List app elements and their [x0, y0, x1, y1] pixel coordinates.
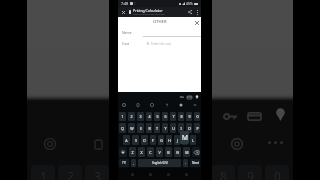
staticText: S — [135, 138, 137, 143]
button[interactable]: Q — [119, 123, 126, 133]
button[interactable]: L — [190, 135, 196, 145]
staticText: , — [133, 161, 134, 165]
button[interactable]: A — [123, 135, 130, 145]
button[interactable]: N — [174, 147, 181, 157]
staticText: J — [177, 138, 178, 143]
staticText: O — [188, 126, 191, 131]
button[interactable]: V — [156, 147, 163, 157]
button[interactable]: Recents — [165, 171, 172, 178]
button[interactable]: H — [166, 135, 172, 145]
button[interactable]: 2 — [128, 112, 135, 121]
button[interactable]: More — [191, 101, 199, 109]
button[interactable]: P — [194, 123, 200, 133]
button[interactable]: Close dialog — [193, 19, 200, 26]
staticText: 1 — [121, 114, 124, 119]
button[interactable]: Voice search — [120, 101, 128, 109]
staticText: 6 — [164, 114, 167, 119]
staticText: D — [143, 138, 146, 143]
staticText: 45% — [186, 1, 193, 6]
button[interactable]: T — [154, 123, 160, 133]
button[interactable]: Backspace — [192, 147, 200, 157]
staticText: K — [184, 138, 187, 143]
button[interactable]: M — [183, 147, 190, 157]
staticText: Next — [192, 161, 199, 165]
staticText: T — [156, 126, 158, 131]
button[interactable]: Menu — [183, 171, 190, 178]
button[interactable]: Y — [162, 123, 168, 133]
button[interactable]: 1 — [119, 112, 126, 121]
button[interactable]: Home — [147, 171, 154, 178]
staticText: C — [149, 150, 152, 155]
staticText: X — [140, 150, 143, 155]
button[interactable]: D — [141, 135, 148, 145]
staticText: ?1! — [122, 161, 127, 165]
staticText: Enter the cost — [151, 42, 172, 46]
button[interactable]: Settings — [177, 101, 185, 109]
button[interactable]: 3 — [137, 112, 144, 121]
staticText: Pricing Calculator — [133, 8, 163, 13]
button[interactable]: K — [182, 135, 188, 145]
staticText: N — [176, 150, 179, 155]
staticText: 9 — [247, 168, 254, 180]
staticText: 0 — [196, 114, 199, 119]
staticText: M — [182, 133, 188, 142]
staticText: 2 — [130, 114, 133, 119]
button[interactable]: Clipboard — [134, 101, 142, 109]
button[interactable]: F — [150, 135, 156, 145]
button[interactable]: E — [137, 123, 144, 133]
button[interactable]: Shift — [119, 147, 127, 157]
button[interactable]: I — [178, 123, 184, 133]
button[interactable]: Z — [129, 147, 136, 157]
staticText: 3 — [94, 168, 101, 180]
staticText: 5 — [156, 114, 159, 119]
button[interactable]: Next — [190, 159, 200, 167]
button[interactable]: O — [186, 123, 192, 133]
staticText: W — [130, 126, 134, 131]
button[interactable]: Microphone — [163, 101, 171, 109]
staticText: A — [125, 138, 128, 143]
button[interactable]: Emoji — [148, 101, 156, 109]
button[interactable]: 4 — [146, 112, 152, 121]
button[interactable]: Back — [129, 171, 136, 178]
button[interactable]: S — [132, 135, 139, 145]
staticText: Q — [121, 126, 124, 131]
button[interactable]: 0 — [194, 112, 200, 121]
button[interactable]: C — [147, 147, 154, 157]
button[interactable]: ?1! — [119, 159, 129, 167]
button[interactable]: More options — [194, 7, 201, 17]
button[interactable]: W — [128, 123, 135, 133]
staticText: Y — [164, 126, 167, 131]
button[interactable]: 7 — [170, 112, 176, 121]
button[interactable]: R — [146, 123, 152, 133]
button[interactable]: English (US) — [138, 159, 181, 167]
staticText: 0 — [274, 168, 281, 180]
staticText: 7:48 — [121, 1, 129, 6]
staticText: . — [185, 161, 186, 165]
button[interactable]: 6 — [162, 112, 168, 121]
staticText: 1 — [40, 168, 47, 180]
button[interactable]: . — [183, 159, 188, 167]
button[interactable]: 5 — [154, 112, 160, 121]
button[interactable]: X — [138, 147, 145, 157]
button[interactable]: 8 — [178, 112, 184, 121]
button[interactable]: Close — [118, 7, 129, 17]
button[interactable]: G — [158, 135, 164, 145]
staticText: P — [196, 126, 199, 131]
button[interactable]: J — [174, 135, 180, 145]
staticText: E — [140, 126, 142, 131]
staticText: 8 — [220, 168, 227, 180]
staticText: G — [160, 138, 163, 143]
button[interactable]: Share — [185, 7, 194, 17]
staticText: L — [192, 138, 194, 143]
button[interactable]: U — [170, 123, 176, 133]
staticText: B — [167, 150, 170, 155]
staticText: Name — [122, 30, 132, 35]
button[interactable]: B — [165, 147, 172, 157]
staticText: 2 — [67, 168, 74, 180]
staticText: OTHER — [153, 19, 167, 25]
button[interactable]: , — [131, 159, 136, 167]
staticText: H — [168, 138, 171, 143]
button[interactable]: 9 — [186, 112, 192, 121]
staticText: $ — [147, 41, 149, 46]
staticText: U — [172, 126, 175, 131]
